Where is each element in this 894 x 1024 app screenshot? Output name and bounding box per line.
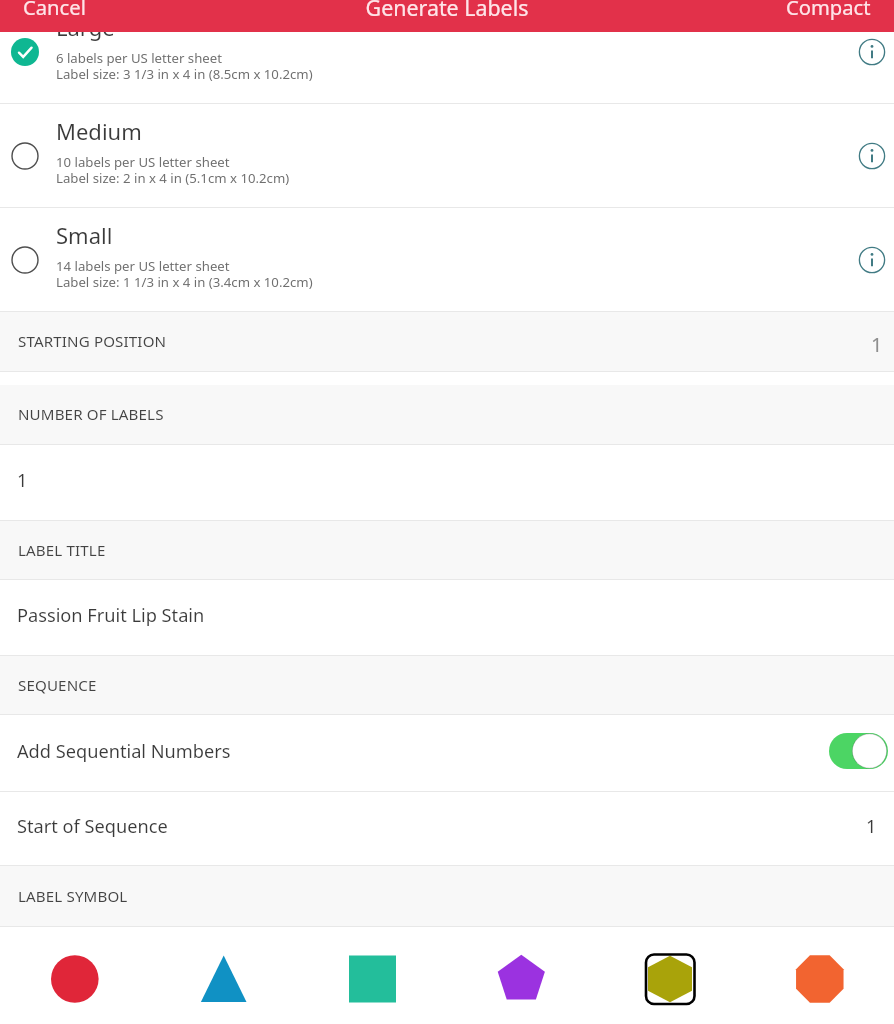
staticText: Label size: 3 1/3 in x 4 in (8.5cm x 10.… xyxy=(56,65,313,83)
staticText: STARTING POSITION xyxy=(18,331,167,352)
staticText: LABEL SYMBOL xyxy=(18,886,128,907)
staticText: Label size: 2 in x 4 in (5.1cm x 10.2cm) xyxy=(56,169,290,187)
staticText: Label size: 1 1/3 in x 4 in (3.4cm x 10.… xyxy=(56,273,313,291)
button[interactable]: NUMBER OF LABELS xyxy=(0,385,894,444)
staticText: 10 labels per US letter sheet xyxy=(56,153,230,171)
staticText: 6 labels per US letter sheet xyxy=(56,49,222,67)
staticText: 1 xyxy=(866,814,877,839)
staticText: Passion Fruit Lip Stain xyxy=(17,603,205,628)
button[interactable]: Start of Sequence xyxy=(0,792,894,865)
staticText: 1 xyxy=(871,331,883,358)
staticText: NUMBER OF LABELS xyxy=(18,404,164,425)
button[interactable]: Info xyxy=(850,238,894,282)
staticText: Compact xyxy=(786,0,871,21)
button[interactable]: Small xyxy=(0,208,894,311)
button[interactable]: Cancel xyxy=(0,0,100,32)
button[interactable]: Info xyxy=(850,134,894,178)
staticText: Large xyxy=(56,12,115,42)
button[interactable]: Large xyxy=(0,0,894,103)
button[interactable]: Medium xyxy=(0,104,894,207)
staticText: Medium xyxy=(56,116,142,146)
staticText: Add Sequential Numbers xyxy=(17,739,231,764)
button[interactable]: SEQUENCE xyxy=(0,656,894,714)
button[interactable]: 1 xyxy=(0,445,894,520)
staticText: Cancel xyxy=(23,0,86,21)
staticText: SEQUENCE xyxy=(18,675,97,696)
button[interactable]: STARTING POSITION xyxy=(0,312,894,371)
button[interactable]: Add Sequential Numbers xyxy=(0,715,894,791)
button[interactable]: LABEL SYMBOL xyxy=(0,866,894,926)
button[interactable]: Passion Fruit Lip Stain xyxy=(0,580,894,655)
staticText: Generate Labels xyxy=(0,0,894,22)
staticText: Small xyxy=(56,220,113,250)
staticText: 14 labels per US letter sheet xyxy=(56,257,230,275)
staticText: 1 xyxy=(17,468,28,493)
staticText: LABEL TITLE xyxy=(18,540,106,561)
button[interactable]: Compact xyxy=(772,0,894,32)
button[interactable]: LABEL TITLE xyxy=(0,521,894,579)
button[interactable]: Add Sequential Numbers toggle xyxy=(829,733,888,769)
button[interactable]: Info xyxy=(850,30,894,74)
staticText: Start of Sequence xyxy=(17,814,168,839)
